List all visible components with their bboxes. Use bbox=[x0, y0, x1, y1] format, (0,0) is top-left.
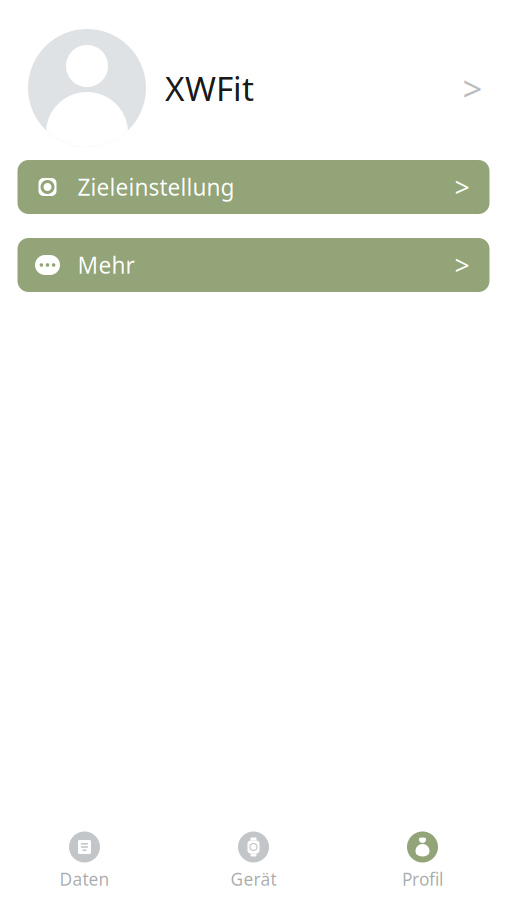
button[interactable]: Zieleinstellung bbox=[17, 160, 489, 214]
staticText: Zieleinstellung bbox=[77, 172, 234, 202]
button[interactable]: XWFit bbox=[0, 29, 507, 147]
staticText: Profil bbox=[402, 867, 443, 890]
staticText: > bbox=[454, 169, 469, 205]
button[interactable]: Gerät bbox=[169, 833, 338, 889]
button[interactable]: Mehr bbox=[17, 238, 489, 292]
staticText: XWFit bbox=[165, 66, 254, 110]
staticText: Daten bbox=[59, 867, 109, 890]
staticText: > bbox=[462, 65, 482, 111]
staticText: > bbox=[454, 247, 469, 283]
button[interactable]: Daten bbox=[0, 833, 169, 889]
button[interactable]: Profil bbox=[338, 833, 507, 889]
staticText: Mehr bbox=[77, 250, 134, 280]
staticText: Gerät bbox=[230, 867, 276, 890]
